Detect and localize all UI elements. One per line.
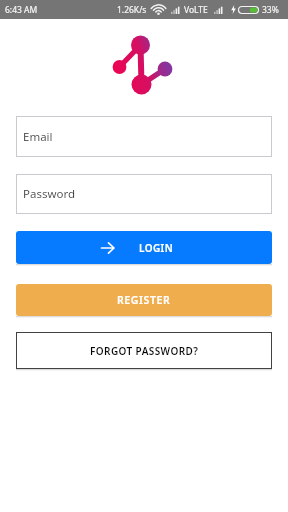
staticText: LOGIN	[139, 241, 174, 255]
staticText: 33%	[262, 4, 279, 16]
staticText: Password	[23, 186, 76, 202]
staticText: 1.26K/s	[117, 4, 147, 16]
staticText: FORGOT PASSWORD?	[90, 344, 199, 358]
staticText: 6:43 AM	[5, 4, 38, 16]
staticText: Email	[23, 129, 53, 145]
button[interactable]: LOGIN	[16, 231, 272, 264]
staticText: VoLTE	[184, 4, 208, 16]
button[interactable]: Password	[16, 174, 272, 214]
button[interactable]: Email	[16, 116, 272, 157]
button[interactable]: REGISTER	[16, 284, 272, 316]
button[interactable]: FORGOT PASSWORD?	[16, 332, 272, 369]
staticText: REGISTER	[117, 293, 171, 307]
